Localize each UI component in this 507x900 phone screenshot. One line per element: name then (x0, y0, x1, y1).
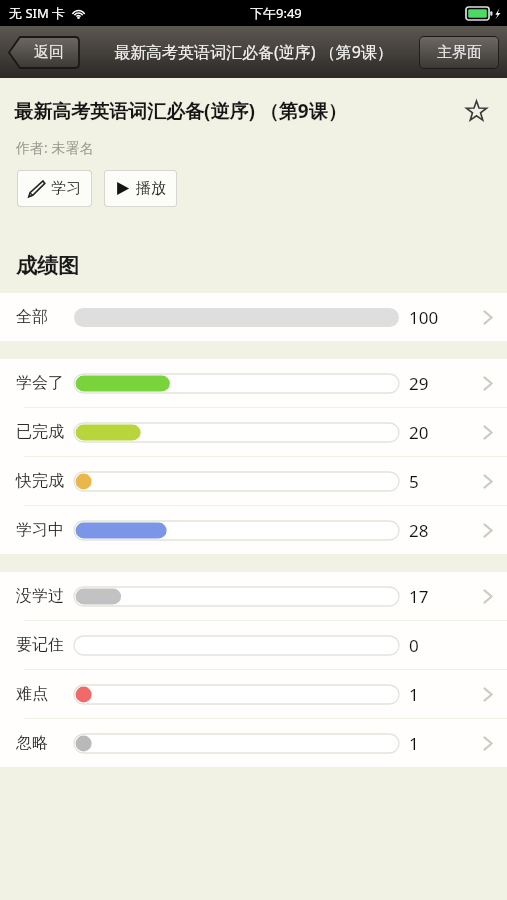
staticText: 学习 (51, 179, 81, 198)
staticText: 29 (409, 372, 429, 395)
button[interactable]: 播放 (104, 170, 177, 207)
staticText: 成绩图 (16, 253, 79, 279)
staticText: 1 (409, 683, 419, 706)
staticText: 已完成 (16, 422, 64, 442)
staticText: 播放 (136, 179, 166, 198)
button[interactable]: 学习中 (0, 506, 507, 554)
staticText: 作者: 未署名 (16, 138, 94, 157)
staticText: 全部 (16, 307, 48, 327)
button[interactable]: 全部 (0, 293, 507, 341)
button[interactable]: 返回 (8, 36, 80, 69)
staticText: 快完成 (16, 471, 64, 491)
staticText: 没学过 (16, 586, 64, 606)
staticText: 28 (409, 519, 429, 542)
button[interactable]: 主界面 (419, 36, 499, 69)
button[interactable]: 没学过 (0, 572, 507, 620)
staticText: 主界面 (437, 43, 482, 62)
staticText: 学习中 (16, 520, 64, 540)
button[interactable]: 已完成 (0, 408, 507, 456)
staticText: 返回 (34, 43, 64, 62)
button[interactable]: 快完成 (0, 457, 507, 505)
staticText: 难点 (16, 684, 48, 704)
staticText: 最新高考英语词汇必备(逆序) （第9课） (14, 98, 347, 124)
staticText: 无 SIM 卡 (9, 4, 66, 22)
button[interactable]: 要记住 (0, 621, 507, 669)
staticText: 20 (409, 421, 429, 444)
staticText: 5 (409, 470, 419, 493)
staticText: 下午9:49 (250, 4, 302, 22)
button[interactable]: 忽略 (0, 719, 507, 767)
staticText: 最新高考英语词汇必备(逆序) （第9课） (114, 41, 393, 63)
button[interactable]: 学习 (17, 170, 92, 207)
staticText: 100 (409, 306, 439, 329)
staticText: 学会了 (16, 373, 64, 393)
button[interactable]: 难点 (0, 670, 507, 718)
staticText: 17 (409, 585, 429, 608)
button[interactable]: 收藏 (457, 92, 495, 130)
button[interactable]: 学会了 (0, 359, 507, 407)
staticText: 要记住 (16, 635, 64, 655)
staticText: 1 (409, 732, 419, 755)
staticText: 0 (409, 634, 419, 657)
staticText: 忽略 (16, 733, 48, 753)
